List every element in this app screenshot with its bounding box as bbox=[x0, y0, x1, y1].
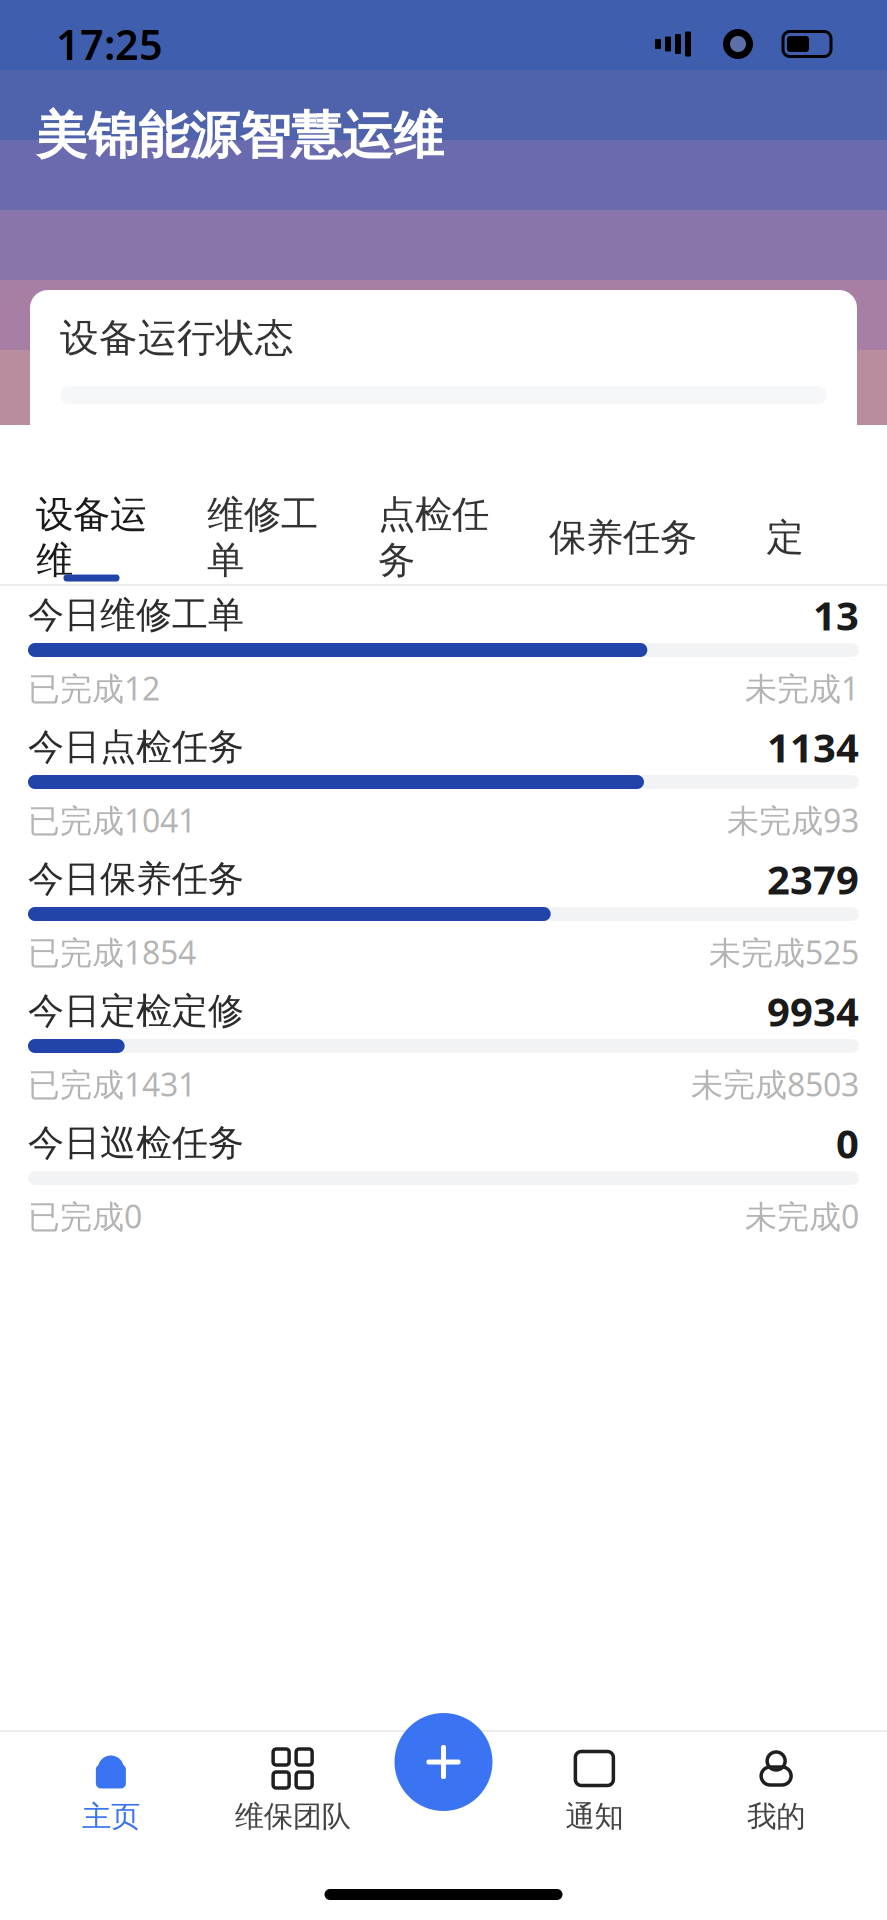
button[interactable]: 今日巡检任务 bbox=[0, 1115, 887, 1247]
staticText: 未完成1 bbox=[745, 667, 859, 709]
staticText: 2379 bbox=[767, 852, 859, 905]
staticText: 已完成1041 bbox=[28, 799, 196, 841]
button[interactable]: 今日保养任务 bbox=[0, 851, 887, 983]
staticText: 已完成1854 bbox=[28, 931, 196, 973]
button[interactable]: 通知 bbox=[503, 1747, 685, 1834]
staticText: 未完成93 bbox=[727, 799, 859, 841]
staticText: 已完成12 bbox=[28, 667, 160, 709]
staticText: 未完成0 bbox=[745, 1195, 859, 1237]
staticText: 定 bbox=[766, 515, 803, 560]
button[interactable]: 点检任务 bbox=[360, 510, 507, 581]
staticText: 今日点检任务 bbox=[28, 725, 244, 769]
staticText: 我的 bbox=[747, 1798, 805, 1834]
staticText: 美锦能源智慧运维 bbox=[36, 105, 444, 167]
button[interactable]: 保养任务 bbox=[531, 510, 715, 581]
staticText: 13 bbox=[813, 588, 859, 641]
staticText: 主页 bbox=[82, 1798, 140, 1834]
staticText: 0 bbox=[836, 1116, 859, 1169]
button[interactable]: 今日维修工单 bbox=[0, 587, 887, 719]
staticText: 17:25 bbox=[56, 17, 163, 71]
button[interactable]: 新建 bbox=[394, 1713, 492, 1811]
staticText: 今日保养任务 bbox=[28, 857, 244, 901]
staticText: 维保团队 bbox=[235, 1798, 351, 1834]
staticText: 已完成0 bbox=[28, 1195, 142, 1237]
button[interactable]: 今日点检任务 bbox=[0, 719, 887, 851]
staticText: 维修工单 bbox=[207, 492, 318, 583]
staticText: 已完成1431 bbox=[28, 1063, 196, 1105]
staticText: 今日定检定修 bbox=[28, 989, 244, 1033]
staticText: 未完成525 bbox=[709, 931, 859, 973]
staticText: 设备运维 bbox=[36, 492, 147, 583]
staticText: 保养任务 bbox=[549, 515, 697, 560]
staticText: 未完成8503 bbox=[691, 1063, 859, 1105]
button[interactable]: 设备运维 bbox=[18, 510, 165, 581]
staticText: 通知 bbox=[565, 1798, 623, 1834]
staticText: 9934 bbox=[767, 984, 859, 1037]
button[interactable]: 我的 bbox=[685, 1747, 867, 1834]
staticText: 1134 bbox=[767, 720, 859, 773]
button[interactable]: 维保团队 bbox=[202, 1747, 384, 1834]
staticText: 设备运行状态 bbox=[60, 314, 294, 362]
staticText: 点检任务 bbox=[378, 492, 489, 583]
button[interactable]: 定 bbox=[739, 510, 831, 581]
staticText: 今日维修工单 bbox=[28, 593, 244, 637]
button[interactable]: 维修工单 bbox=[189, 510, 336, 581]
button[interactable]: 主页 bbox=[20, 1747, 202, 1834]
staticText: 今日巡检任务 bbox=[28, 1121, 244, 1165]
button[interactable]: 今日定检定修 bbox=[0, 983, 887, 1115]
